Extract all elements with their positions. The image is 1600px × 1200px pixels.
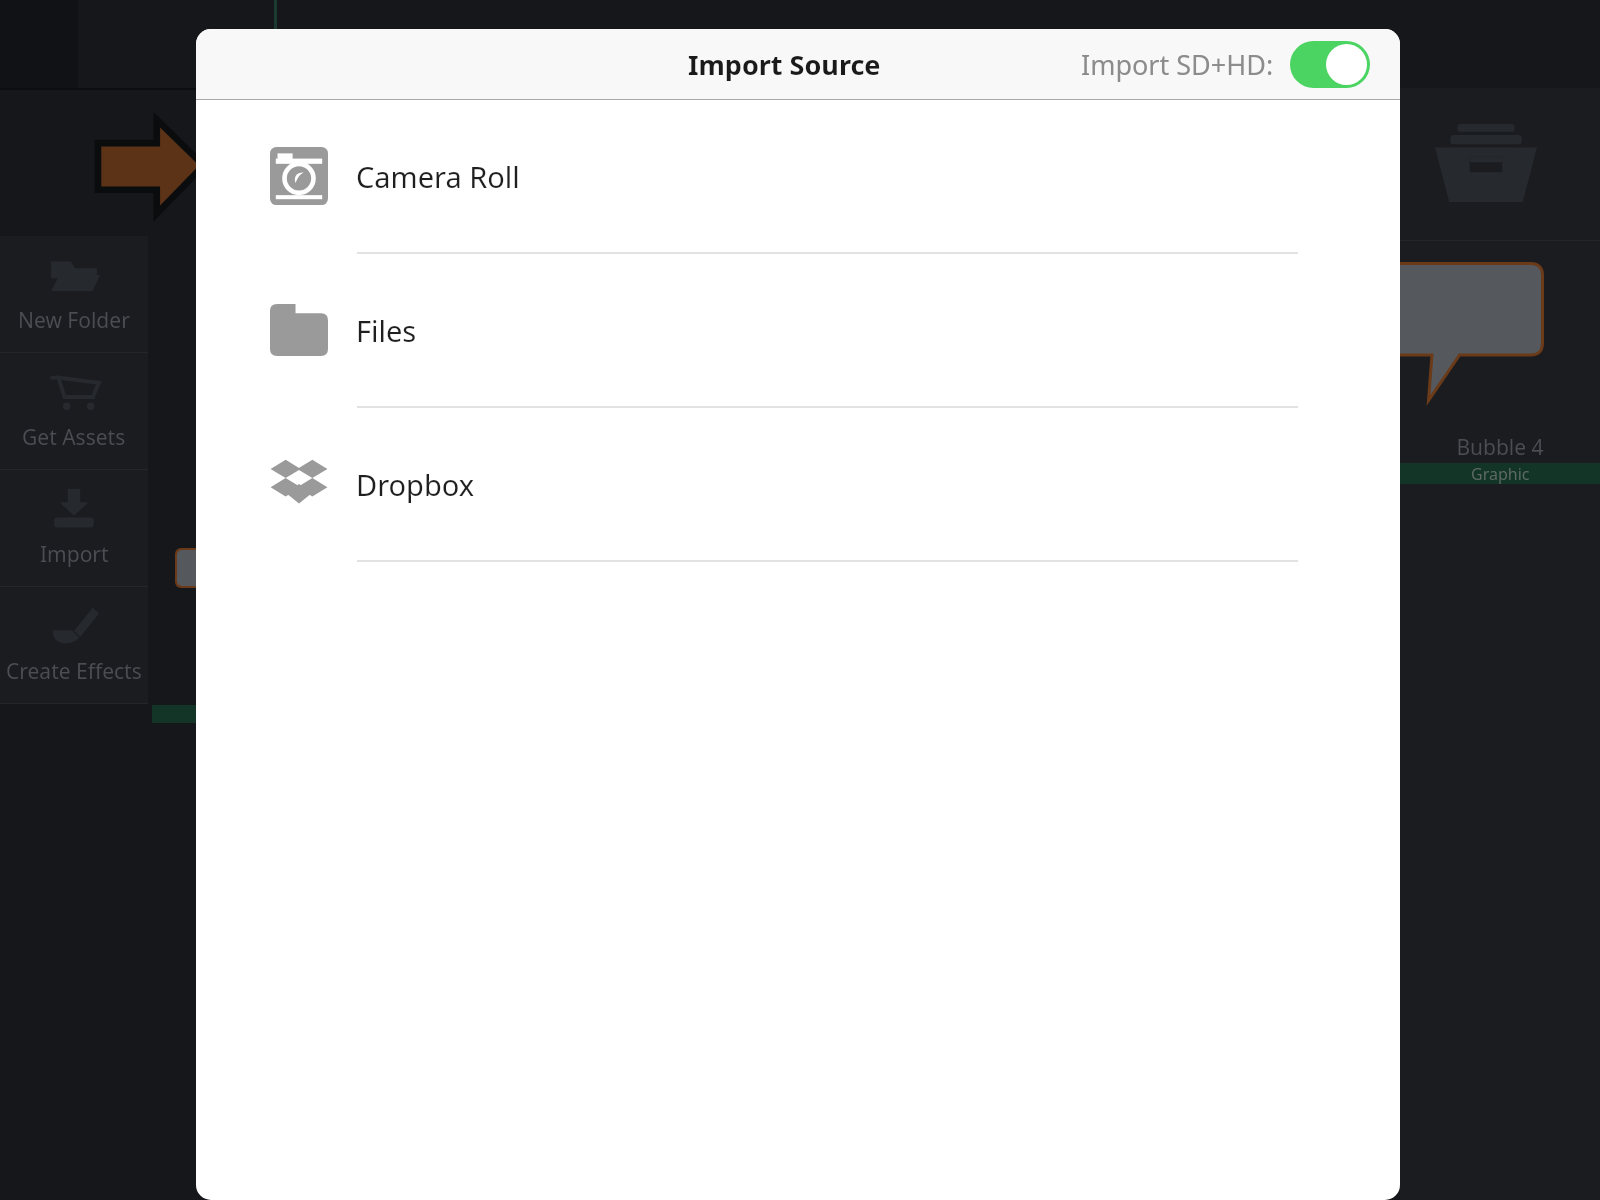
button[interactable]: Get Assets <box>0 353 148 469</box>
staticText: Dropbox <box>356 465 475 504</box>
button[interactable]: Import <box>0 470 148 586</box>
button[interactable]: Create Effects <box>0 587 148 703</box>
staticText: Files <box>356 311 417 350</box>
button[interactable]: Files <box>196 254 1400 408</box>
staticText: Graphic <box>1471 463 1530 484</box>
staticText: Import <box>40 540 109 569</box>
button[interactable]: Camera Roll <box>196 100 1400 254</box>
staticText: New Folder <box>18 306 130 335</box>
staticText: Import SD+HD: <box>1081 46 1274 83</box>
button[interactable]: Dropbox <box>196 408 1400 562</box>
staticText: Create Effects <box>6 657 142 686</box>
button[interactable]: New Folder <box>0 236 148 352</box>
staticText: Import Source <box>688 46 881 83</box>
staticText: Bubble 4 <box>1400 433 1600 462</box>
staticText: Get Assets <box>22 423 126 452</box>
staticText: Camera Roll <box>356 157 520 196</box>
button[interactable]: Import SD plus HD toggle <box>1290 41 1370 88</box>
